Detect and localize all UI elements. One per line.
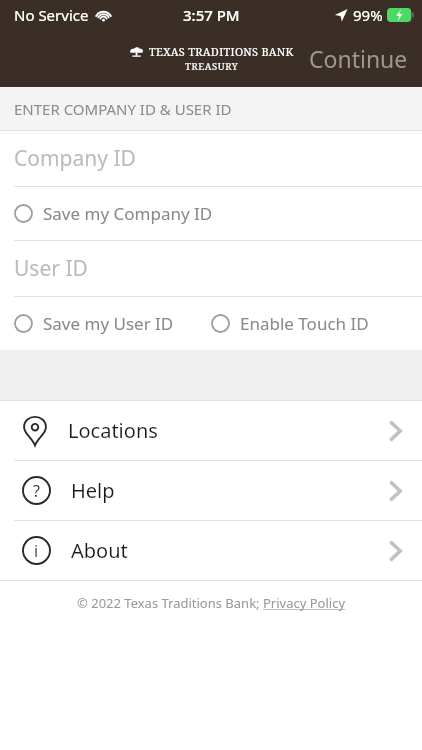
staticText: ? <box>33 480 40 502</box>
staticText: Save my Company ID <box>43 202 213 225</box>
staticText: ENTER COMPANY ID & USER ID <box>14 99 232 119</box>
staticText: 3:57 PM <box>183 5 240 25</box>
button[interactable]: Continue <box>295 35 422 82</box>
staticText: No Service <box>14 5 89 25</box>
staticText: Help <box>71 477 115 504</box>
staticText: TEXAS TRADITIONS BANK <box>149 44 294 59</box>
button[interactable]: Save my Company ID <box>0 202 422 225</box>
staticText: © 2022 Texas Traditions Bank; <box>77 594 263 612</box>
staticText: TREASURY <box>185 60 239 73</box>
button[interactable]: Save my User ID <box>0 312 211 335</box>
button[interactable]: ? <box>0 461 422 520</box>
staticText: Company ID <box>14 144 136 173</box>
staticText: User ID <box>14 254 88 283</box>
button[interactable]: Enable Touch ID <box>211 312 422 335</box>
staticText: Privacy Policy <box>263 594 346 612</box>
staticText: About <box>71 537 128 564</box>
button[interactable]: User ID <box>0 241 422 296</box>
button[interactable]: Privacy Policy <box>263 594 346 612</box>
staticText: Save my User ID <box>43 312 174 335</box>
staticText: Locations <box>68 417 158 444</box>
staticText: 99% <box>353 5 383 25</box>
button[interactable]: i <box>0 521 422 580</box>
button[interactable]: Locations <box>0 401 422 460</box>
staticText: Continue <box>309 43 408 74</box>
staticText: Enable Touch ID <box>240 312 369 335</box>
button[interactable]: Company ID <box>0 131 422 186</box>
staticText: i <box>34 540 39 562</box>
